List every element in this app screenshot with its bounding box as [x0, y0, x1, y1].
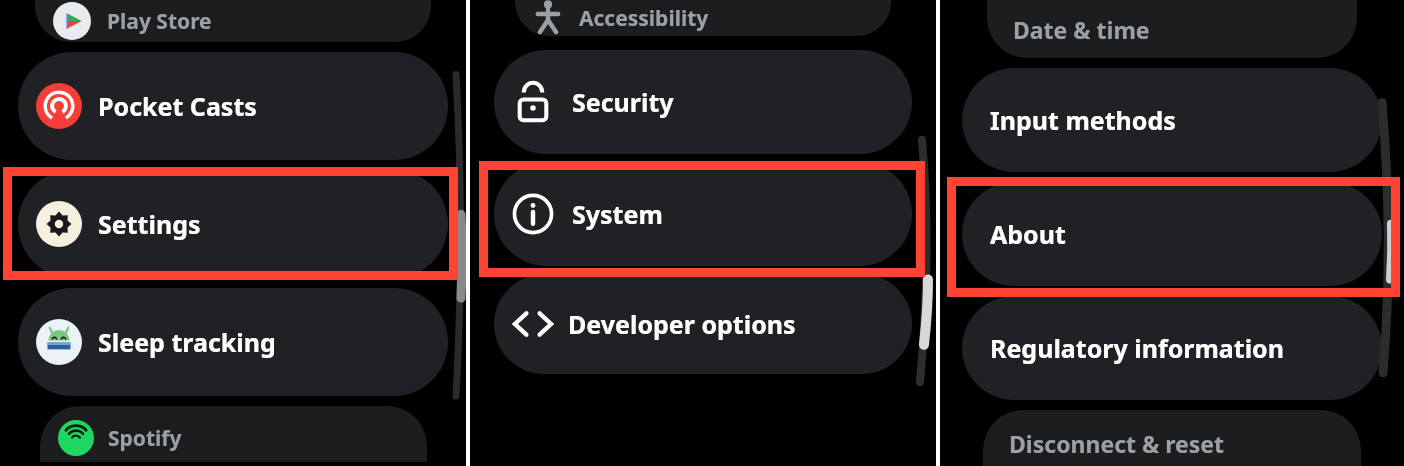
staticText: Input methods: [990, 103, 1176, 137]
staticText: Security: [572, 85, 674, 119]
button[interactable]: Disconnect & reset: [983, 410, 1361, 466]
staticText: Settings: [98, 207, 201, 241]
staticText: Play Store: [107, 7, 212, 36]
button[interactable]: About: [962, 182, 1382, 286]
staticText: Date & time: [1013, 14, 1150, 45]
button[interactable]: System: [494, 162, 912, 266]
button[interactable]: Input methods: [962, 68, 1382, 172]
button[interactable]: Regulatory information: [962, 296, 1382, 400]
staticText: Pocket Casts: [98, 89, 257, 123]
staticText: About: [990, 217, 1066, 251]
button[interactable]: Pocket Casts: [18, 52, 448, 160]
staticText: Accessibility: [579, 4, 709, 33]
button[interactable]: Date & time: [987, 0, 1357, 58]
staticText: System: [572, 197, 663, 231]
staticText: Disconnect & reset: [1009, 428, 1225, 459]
button[interactable]: Settings: [18, 170, 448, 278]
button[interactable]: Spotify: [40, 406, 427, 462]
button[interactable]: Play Store: [35, 0, 431, 42]
button[interactable]: Accessibility: [515, 0, 891, 36]
button[interactable]: Sleep tracking: [18, 288, 448, 396]
staticText: Regulatory information: [990, 331, 1284, 365]
staticText: Developer options: [568, 307, 796, 341]
staticText: Sleep tracking: [98, 325, 276, 359]
staticText: Spotify: [108, 424, 182, 453]
button[interactable]: Security: [494, 50, 912, 154]
button[interactable]: Developer options: [494, 274, 912, 374]
